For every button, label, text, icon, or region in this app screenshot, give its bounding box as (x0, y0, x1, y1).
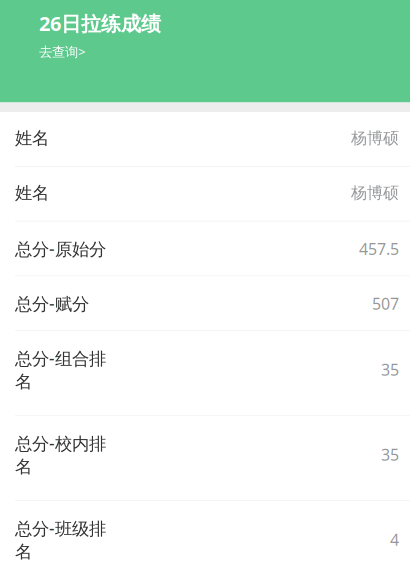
button[interactable]: 姓名 (0, 167, 410, 222)
staticText: 507 (372, 293, 399, 314)
staticText: 总分-班级排名 (15, 517, 106, 562)
staticText: 总分-组合排名 (15, 347, 106, 392)
staticText: 35 (381, 444, 399, 465)
staticText: 4 (390, 529, 399, 550)
button[interactable]: 总分-原始分 (0, 222, 410, 276)
button[interactable]: 总分-组合排名 (0, 331, 410, 416)
staticText: 457.5 (359, 238, 399, 259)
staticText: 总分-原始分 (15, 237, 106, 260)
staticText: 姓名 (15, 182, 49, 204)
staticText: 杨博硕 (351, 128, 399, 148)
staticText: 26日拉练成绩 (39, 10, 161, 37)
staticText: 35 (381, 359, 399, 380)
staticText: 姓名 (15, 128, 49, 149)
staticText: 杨博硕 (351, 183, 399, 203)
button[interactable]: 总分-班级排名 (0, 501, 410, 562)
staticText: 总分-赋分 (15, 292, 89, 315)
button[interactable]: 总分-校内排名 (0, 416, 410, 501)
staticText: 去查询> (39, 43, 86, 60)
button[interactable]: 去查询> (39, 43, 86, 60)
button[interactable]: 总分-赋分 (0, 276, 410, 331)
button[interactable]: 姓名 (0, 112, 410, 167)
staticText: 总分-校内排名 (15, 432, 106, 477)
